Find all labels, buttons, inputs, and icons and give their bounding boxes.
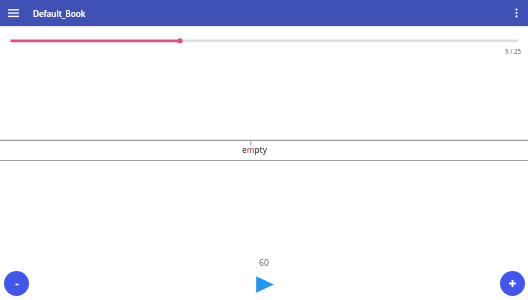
button[interactable]: Decrease — [4, 271, 29, 296]
button[interactable]: More options — [502, 0, 528, 26]
staticText: 60 — [259, 257, 269, 269]
button[interactable]: Menu — [0, 0, 26, 26]
staticText: empty — [242, 144, 267, 155]
button[interactable]: Add — [500, 271, 525, 296]
staticText: 9 / 25 — [505, 47, 522, 55]
button[interactable]: Seek position — [0, 31, 528, 50]
staticText: Default_Book — [33, 8, 86, 19]
button[interactable]: Play — [252, 272, 277, 296]
